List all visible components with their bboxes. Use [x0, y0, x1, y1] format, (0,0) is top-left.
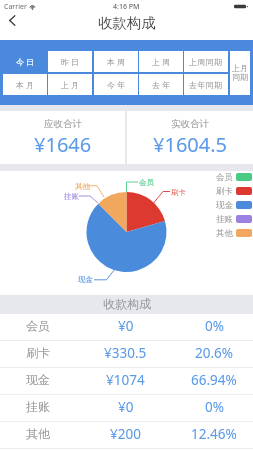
- button[interactable]: 本月: [3, 74, 47, 95]
- staticText: ¥1074: [106, 371, 145, 389]
- button[interactable]: 上月同期: [230, 51, 250, 95]
- button[interactable]: 实收合计: [127, 111, 253, 164]
- button[interactable]: 其他: [216, 226, 252, 240]
- staticText: 刷卡: [171, 188, 186, 197]
- button[interactable]: 挂账: [0, 395, 253, 421]
- button[interactable]: Back: [1, 9, 23, 31]
- staticText: 上周同期: [189, 57, 223, 67]
- button[interactable]: 今年: [94, 74, 138, 95]
- button[interactable]: 刷卡: [0, 341, 253, 367]
- staticText: ¥1604.5: [153, 131, 227, 158]
- staticText: ¥330.5: [104, 344, 147, 362]
- staticText: 本月: [15, 80, 35, 90]
- staticText: 4:16 PM: [113, 2, 140, 12]
- button[interactable]: 挂账: [216, 212, 252, 226]
- button[interactable]: 其他: [0, 422, 253, 448]
- staticText: ¥0: [118, 317, 134, 335]
- staticText: 刷卡: [216, 186, 233, 197]
- staticText: 会员: [26, 318, 50, 333]
- staticText: 本周: [106, 57, 126, 67]
- button[interactable]: 上月: [48, 74, 92, 95]
- staticText: 20.6%: [195, 344, 234, 362]
- staticText: 上月同期: [231, 63, 249, 83]
- staticText: 挂账: [216, 214, 233, 225]
- button[interactable]: 昨日: [48, 51, 92, 72]
- staticText: 66.94%: [191, 371, 237, 389]
- staticText: 其他: [26, 426, 50, 441]
- staticText: 收款构成: [103, 296, 151, 311]
- button[interactable]: 应收合计: [0, 111, 125, 164]
- staticText: 去年: [151, 80, 171, 90]
- button[interactable]: 上周同期: [184, 51, 228, 72]
- button[interactable]: 去年同期: [184, 74, 228, 95]
- button[interactable]: 上周: [139, 51, 183, 72]
- button[interactable]: 本周: [94, 51, 138, 72]
- staticText: 其他: [75, 182, 90, 191]
- staticText: 现金: [216, 200, 233, 211]
- button[interactable]: 会员: [216, 170, 252, 184]
- staticText: 其他: [216, 228, 233, 239]
- staticText: Carrier: [4, 2, 27, 12]
- staticText: 0%: [205, 317, 224, 335]
- staticText: 收款构成: [98, 14, 156, 32]
- staticText: 今年: [106, 80, 126, 90]
- staticText: 0%: [205, 398, 224, 416]
- staticText: 会员: [139, 178, 154, 187]
- staticText: 应收合计: [44, 118, 82, 130]
- staticText: 挂账: [26, 399, 50, 414]
- button[interactable]: 会员: [0, 314, 253, 340]
- button[interactable]: 去年: [139, 74, 183, 95]
- staticText: 上周: [151, 57, 171, 67]
- button[interactable]: 现金: [0, 368, 253, 394]
- staticText: 上月: [60, 80, 80, 90]
- staticText: ¥200: [110, 425, 141, 443]
- button[interactable]: 今日: [3, 51, 47, 72]
- staticText: 实收合计: [171, 118, 209, 130]
- staticText: ¥1646: [34, 131, 92, 158]
- button[interactable]: 现金: [216, 198, 252, 212]
- staticText: 昨日: [60, 57, 80, 67]
- button[interactable]: 刷卡: [216, 184, 252, 198]
- staticText: 12.46%: [191, 425, 237, 443]
- staticText: 刷卡: [26, 345, 50, 360]
- staticText: 现金: [78, 275, 93, 284]
- staticText: 会员: [216, 172, 233, 183]
- staticText: 去年同期: [189, 80, 223, 90]
- staticText: 挂账: [64, 192, 79, 201]
- staticText: 今日: [15, 57, 35, 67]
- staticText: 现金: [26, 372, 50, 387]
- staticText: ¥0: [118, 398, 134, 416]
